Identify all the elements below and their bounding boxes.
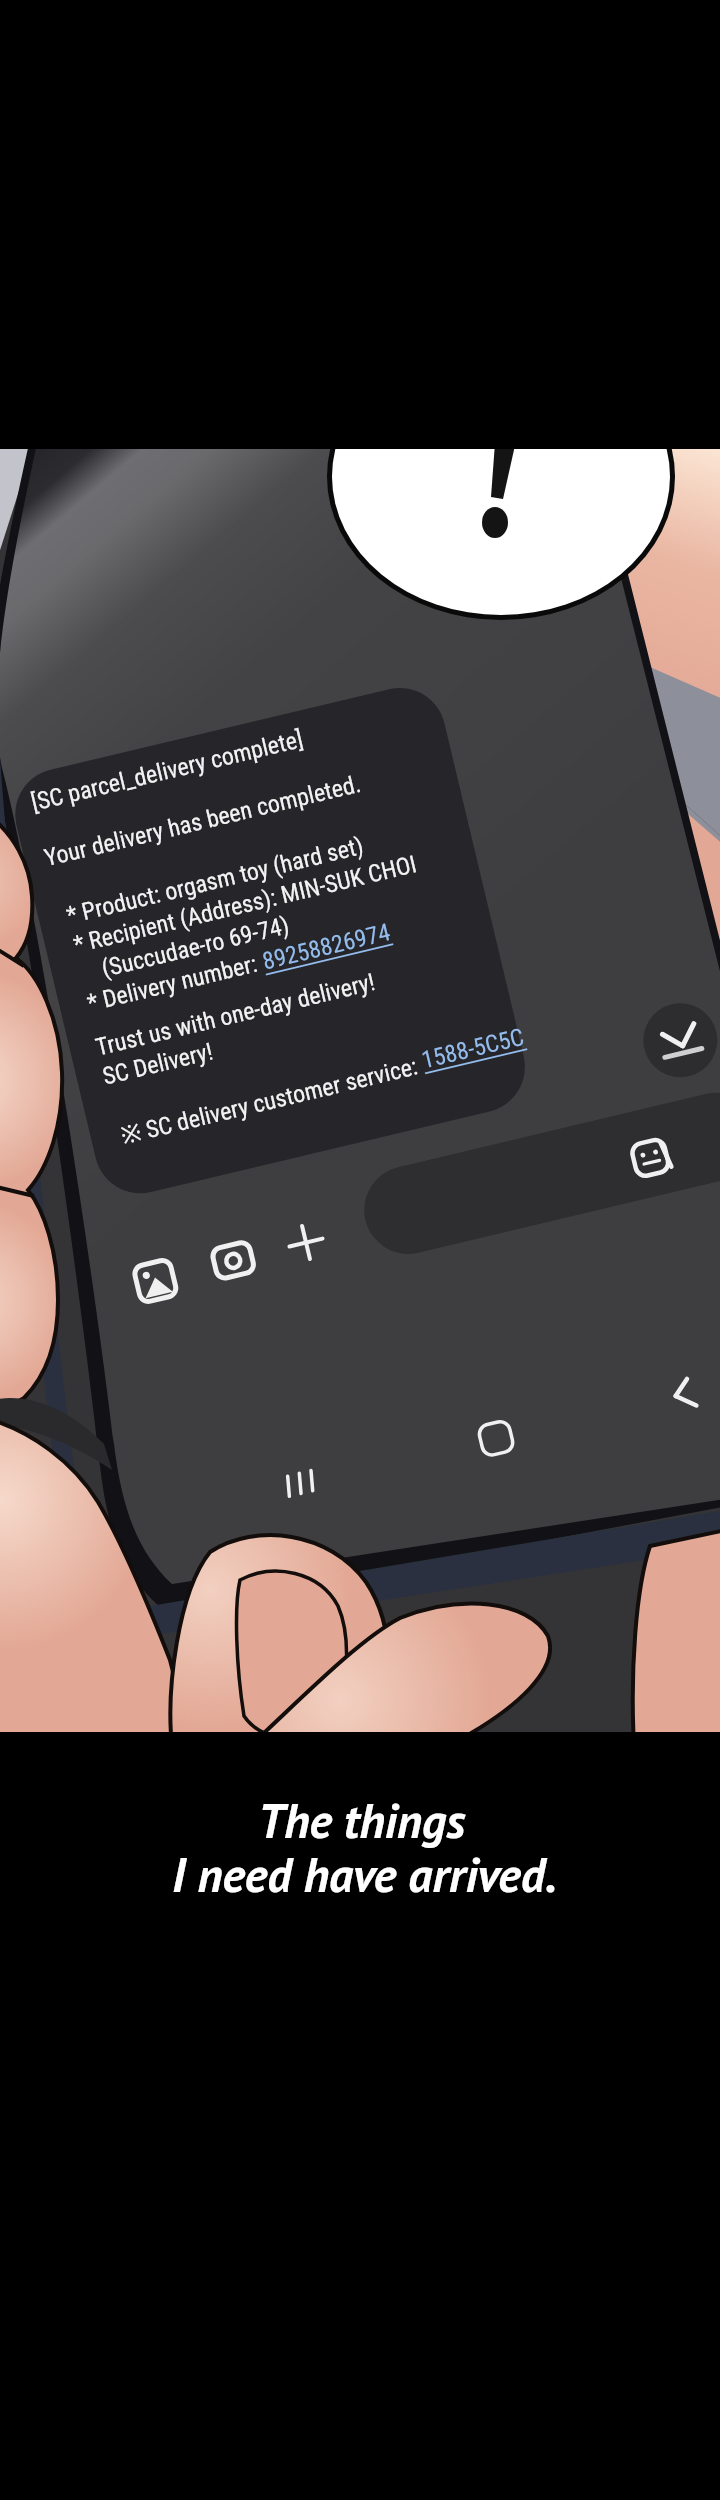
button[interactable]: Message input [350, 1130, 680, 1240]
button[interactable]: Scroll to bottom [644, 1004, 718, 1078]
button[interactable]: More options [268, 1162, 346, 1240]
button[interactable]: Recent apps [262, 1444, 340, 1522]
button[interactable]: Emoji [614, 1110, 692, 1208]
button[interactable]: Home [458, 1398, 536, 1476]
button[interactable]: Take photo [194, 1180, 272, 1258]
button[interactable]: Attach image [116, 1200, 194, 1278]
button[interactable]: Back [646, 1354, 720, 1432]
